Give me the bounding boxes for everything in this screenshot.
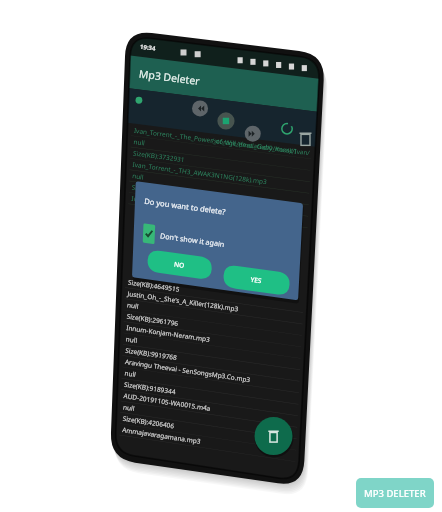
button[interactable]: No bbox=[100, 184, 165, 204]
button[interactable]: Delete selected files bbox=[256, 286, 285, 315]
button[interactable]: Yes bbox=[155, 190, 220, 210]
button[interactable]: MP3 Deleter bbox=[254, 339, 310, 360]
